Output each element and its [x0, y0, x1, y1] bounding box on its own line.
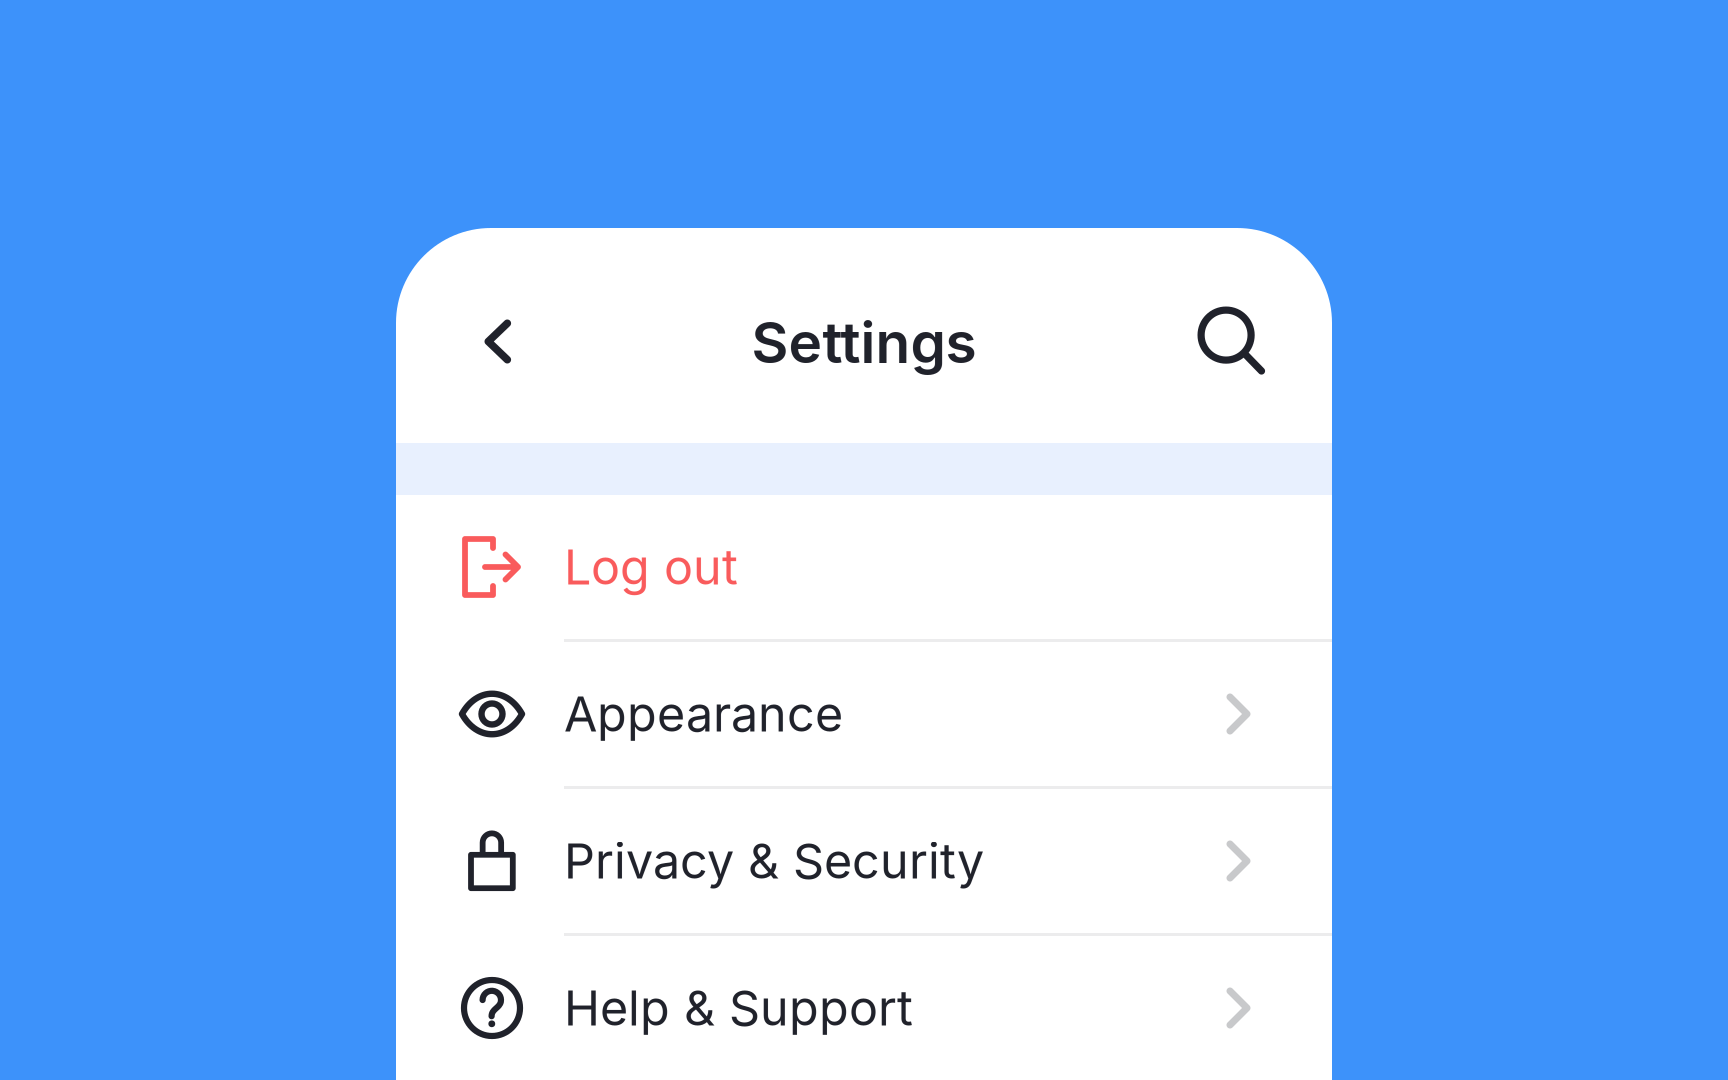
staticText: Log out: [564, 538, 738, 596]
button[interactable]: Privacy & Security: [396, 789, 1332, 933]
button[interactable]: Help & Support: [396, 936, 1332, 1080]
button[interactable]: Search: [1184, 293, 1280, 389]
staticText: Privacy & Security: [564, 832, 984, 890]
staticText: Appearance: [564, 685, 843, 743]
staticText: Settings: [751, 308, 976, 377]
button[interactable]: Log out: [396, 495, 1332, 639]
button[interactable]: Back: [450, 293, 546, 389]
staticText: Help & Support: [564, 979, 913, 1037]
button[interactable]: Appearance: [396, 642, 1332, 786]
